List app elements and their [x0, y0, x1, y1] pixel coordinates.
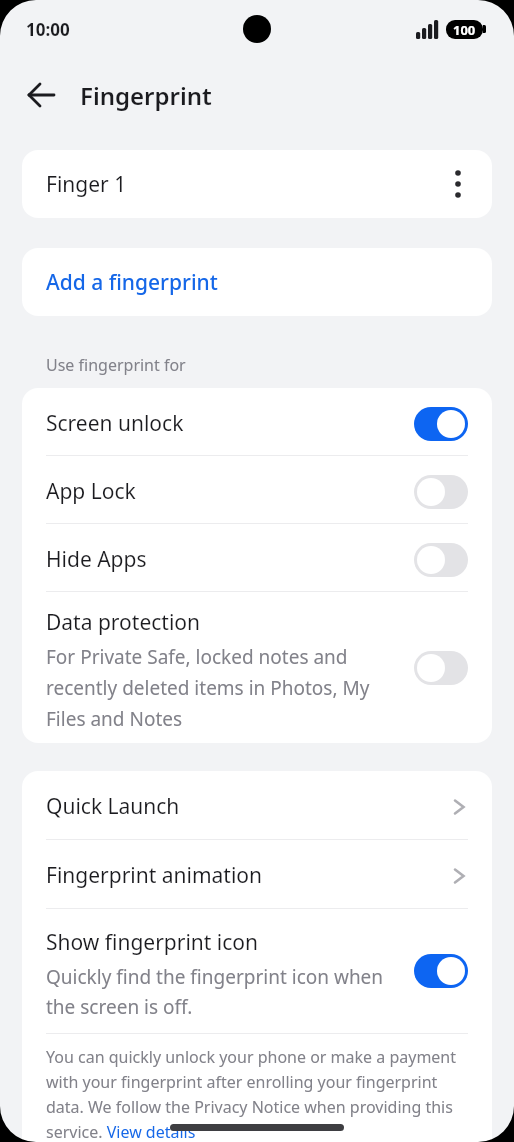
staticText: Fingerprint animation	[46, 861, 452, 890]
button[interactable]: Data protection	[22, 592, 492, 743]
staticText: Fingerprint	[80, 79, 212, 112]
button[interactable]	[24, 78, 58, 112]
button[interactable]	[414, 407, 468, 441]
button[interactable]: Finger 1	[22, 150, 492, 218]
staticText: Screen unlock	[46, 409, 414, 438]
button[interactable]: Fingerprint animation	[22, 840, 492, 908]
button[interactable]	[414, 543, 468, 577]
staticText: Use fingerprint for	[46, 354, 186, 376]
staticText: For Private Safe, locked notes and recen…	[46, 644, 370, 732]
button[interactable]	[414, 954, 468, 988]
staticText: Data protection	[46, 608, 200, 637]
staticText: Quick Launch	[46, 792, 452, 821]
staticText: Quickly find the fingerprint icon when t…	[46, 964, 384, 1019]
staticText: Add a fingerprint	[46, 268, 218, 297]
staticText: Show fingerprint icon	[46, 928, 259, 957]
staticText: Finger 1	[46, 170, 127, 199]
staticText: Hide Apps	[46, 545, 414, 574]
button[interactable]: Show fingerprint icon	[22, 909, 492, 1033]
button[interactable]	[414, 475, 468, 509]
button[interactable]: Quick Launch	[22, 771, 492, 839]
staticText: App Lock	[46, 477, 414, 506]
button[interactable]: You can quickly unlock your phone or mak…	[46, 1046, 457, 1142]
button[interactable]	[414, 651, 468, 685]
button[interactable]: Hide Apps	[22, 524, 492, 591]
button[interactable]: Screen unlock	[22, 388, 492, 455]
button[interactable]: App Lock	[22, 456, 492, 523]
button[interactable]: Add a fingerprint	[22, 248, 492, 316]
staticText: 100	[453, 21, 476, 39]
staticText: 10:00	[26, 18, 70, 41]
